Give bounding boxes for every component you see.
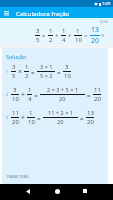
staticText: + <box>68 32 72 40</box>
staticText: + <box>21 90 25 99</box>
staticText: 10 <box>28 118 35 126</box>
staticText: 2 <box>49 36 53 44</box>
staticText: 13 <box>87 109 94 117</box>
staticText: 1 <box>62 27 66 35</box>
staticText: 11 + 2 × 1 <box>48 109 74 117</box>
staticText: 3 <box>12 63 16 71</box>
staticText: 2 × 3 + 5 × 1 <box>47 86 79 94</box>
staticText: 1 <box>76 27 80 35</box>
staticText: 3 <box>6 115 9 120</box>
staticText: 20 <box>94 95 101 103</box>
staticText: 1 <box>28 86 32 94</box>
staticText: = <box>87 91 91 99</box>
staticText: = <box>31 68 35 76</box>
button[interactable]: Menu <box>0 7 12 18</box>
staticText: 11 <box>12 109 19 117</box>
staticText: = <box>84 32 88 40</box>
staticText: 3 <box>13 86 17 94</box>
staticText: 1 <box>29 109 33 117</box>
staticText: 5 <box>36 36 40 44</box>
staticText: 2 <box>6 92 9 97</box>
staticText: 11 <box>94 86 101 94</box>
staticText: = <box>57 68 61 76</box>
staticText: = <box>34 91 38 99</box>
staticText: 20 <box>59 95 66 103</box>
staticText: = <box>37 114 41 122</box>
staticText: + <box>55 32 59 40</box>
staticText: 7:29 <box>102 1 111 7</box>
staticText: + <box>21 113 25 122</box>
staticText: 20 <box>12 118 19 126</box>
staticText: 3 × 1 <box>40 63 53 71</box>
staticText: 3 <box>36 27 40 35</box>
staticText: × <box>18 67 22 76</box>
staticText: % <box>101 33 105 39</box>
staticText: 10 <box>12 95 19 103</box>
staticText: 5 × 2 <box>40 72 53 80</box>
staticText: 1 <box>6 69 9 74</box>
staticText: 10 <box>75 36 82 44</box>
staticText: 5 <box>12 72 16 80</box>
staticText: 4 <box>62 36 66 44</box>
button[interactable]: Back <box>21 184 35 198</box>
staticText: PARA TRÁS <box>7 174 29 180</box>
staticText: 3 <box>65 63 69 71</box>
staticText: 0,65 <box>100 19 108 24</box>
staticText: × <box>42 32 46 40</box>
staticText: 2 <box>25 72 29 80</box>
staticText: 1 <box>25 63 29 71</box>
button[interactable]: Recents <box>78 184 92 198</box>
staticText: 20 <box>91 36 100 46</box>
staticText: 20 <box>87 118 94 126</box>
staticText: Calculadora fração <box>16 9 70 17</box>
staticText: = <box>80 114 84 122</box>
staticText: 20 <box>57 118 64 126</box>
staticText: 4 <box>28 95 32 103</box>
button[interactable]: PARA TRÁS <box>7 174 29 180</box>
staticText: 13 <box>91 25 100 35</box>
staticText: Solução <box>6 53 27 60</box>
staticText: 10 <box>64 72 71 80</box>
button[interactable]: Home <box>50 184 64 198</box>
staticText: 1 <box>49 27 53 35</box>
